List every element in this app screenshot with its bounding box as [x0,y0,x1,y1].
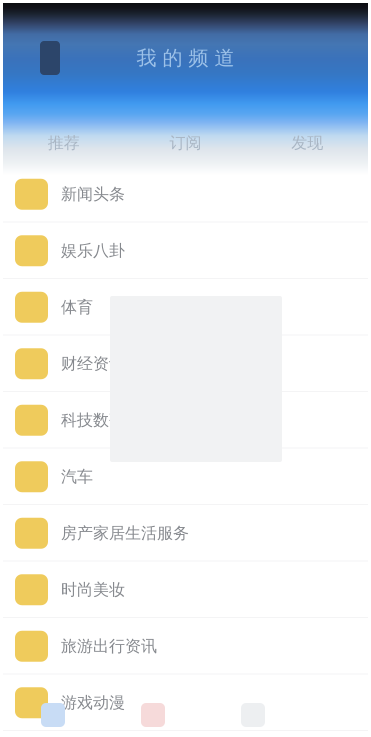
button[interactable]: 推荐 [3,132,125,154]
button[interactable]: 财经资讯 [3,335,368,392]
button[interactable]: Mine [203,693,303,737]
button[interactable]: 房产家居生活服务 [3,505,368,561]
staticText: 汽车 [61,467,93,487]
button[interactable]: 娱乐八卦 [3,222,368,279]
staticText: 体育 [61,297,93,317]
staticText: 游戏动漫 [61,693,125,713]
staticText: 推荐 [48,133,80,153]
staticText: 订阅 [169,133,201,153]
staticText: 时尚美妆 [61,580,125,600]
button[interactable]: 新闻头条 [3,166,368,222]
button[interactable]: 订阅 [125,132,246,154]
staticText: 财经资讯 [61,354,125,374]
button[interactable]: 游戏动漫 [3,674,368,731]
button[interactable]: Discover [103,693,203,737]
button[interactable]: 发现 [246,132,368,154]
button[interactable]: 汽车 [3,448,368,505]
staticText: 我 的 频 道 [136,46,234,70]
staticText: 娱乐八卦 [61,241,125,261]
button[interactable]: 体育 [3,279,368,335]
button[interactable]: Home [3,693,103,737]
button[interactable]: 时尚美妆 [3,561,368,618]
staticText: 科技数码 [61,410,125,430]
staticText: 发现 [291,133,323,153]
button[interactable]: 旅游出行资讯 [3,618,368,674]
staticText: 房产家居生活服务 [61,523,189,543]
staticText: 旅游出行资讯 [61,636,157,656]
button[interactable]: Account [40,41,60,75]
staticText: 新闻头条 [61,184,125,204]
button[interactable]: 科技数码 [3,392,368,448]
